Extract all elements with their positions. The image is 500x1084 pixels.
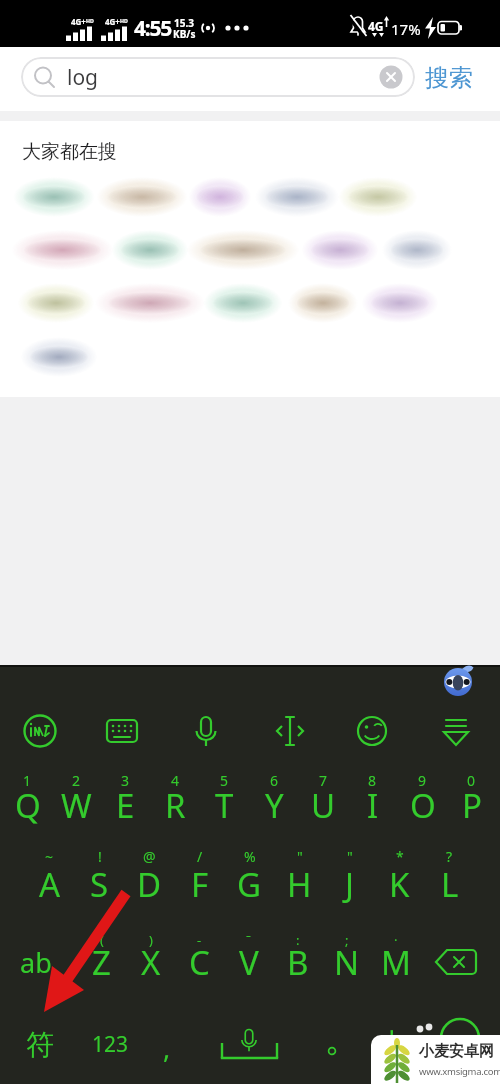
staticText: Y [265, 783, 284, 828]
staticText: U [311, 783, 336, 828]
staticText: 4:55 [134, 14, 172, 43]
staticText: P [462, 783, 482, 828]
staticText: 6 [270, 771, 279, 790]
button[interactable] [24, 286, 88, 320]
button[interactable] [308, 233, 372, 267]
button[interactable]: M [371, 939, 420, 985]
button[interactable] [20, 180, 88, 214]
button[interactable]: log [21, 57, 415, 97]
button[interactable] [104, 180, 180, 214]
button[interactable]: F [175, 861, 224, 907]
button[interactable]: B [273, 939, 322, 985]
button[interactable]: 符 [12, 1019, 68, 1069]
staticText: 8 [368, 771, 377, 790]
button[interactable] [18, 709, 62, 753]
staticText: 4 [171, 771, 180, 790]
button[interactable]: K [375, 861, 424, 907]
staticText: @ [143, 847, 156, 866]
staticText: ( [100, 931, 104, 949]
staticText: " [347, 847, 353, 866]
button[interactable]: Y [250, 782, 299, 828]
button[interactable]: U [299, 782, 348, 828]
button[interactable]: R [151, 782, 200, 828]
button[interactable]: Z [77, 939, 126, 985]
button[interactable]: X [126, 939, 175, 985]
button[interactable]: W [52, 782, 101, 828]
staticText: C [189, 940, 210, 985]
button[interactable] [27, 340, 91, 374]
button[interactable]: T [200, 782, 249, 828]
button[interactable] [388, 233, 446, 267]
button[interactable] [100, 709, 144, 753]
button[interactable]: 中 [367, 1019, 417, 1069]
staticText: H [287, 862, 312, 907]
staticText: www.xmsigma.com [419, 1065, 500, 1078]
button[interactable]: A [25, 861, 74, 907]
staticText: Z [92, 940, 111, 985]
button[interactable]: P [447, 782, 496, 828]
button[interactable] [310, 1025, 354, 1069]
button[interactable]: E [101, 782, 150, 828]
button[interactable] [438, 662, 480, 704]
staticText: 中 [378, 1026, 407, 1063]
staticText: 7 [319, 771, 328, 790]
button[interactable]: , [147, 1022, 187, 1072]
button[interactable] [428, 939, 484, 985]
button[interactable] [104, 286, 196, 320]
staticText: 1 [23, 771, 32, 790]
staticText: ~ [45, 847, 54, 866]
staticText: 4G [368, 18, 384, 32]
staticText: ! [98, 847, 102, 866]
button[interactable]: S [75, 861, 124, 907]
staticText: ; [345, 931, 349, 949]
button[interactable]: N [322, 939, 371, 985]
button[interactable]: V [224, 939, 273, 985]
staticText: 搜索 [425, 63, 473, 93]
button[interactable]: Q [3, 782, 52, 828]
button[interactable] [345, 180, 411, 214]
button[interactable]: I [348, 782, 397, 828]
button[interactable]: 搜索 [414, 53, 484, 103]
staticText: K [389, 862, 410, 907]
button[interactable]: O [398, 782, 447, 828]
button[interactable] [118, 233, 182, 267]
staticText: E [116, 783, 135, 828]
button[interactable]: H [275, 861, 324, 907]
staticText: D [137, 862, 162, 907]
staticText: " [297, 847, 303, 866]
button[interactable]: ab [10, 939, 62, 985]
button[interactable] [268, 709, 312, 753]
button[interactable] [434, 709, 478, 753]
button[interactable] [20, 233, 105, 267]
button[interactable] [294, 286, 352, 320]
button[interactable]: G [225, 861, 274, 907]
staticText: T [215, 783, 234, 828]
button[interactable] [184, 709, 228, 753]
staticText: · [394, 931, 398, 949]
button[interactable]: 123 [82, 1019, 138, 1069]
staticText: X [141, 940, 161, 985]
staticText: 3 [121, 771, 130, 790]
button[interactable]: C [175, 939, 224, 985]
staticText: G [237, 862, 262, 907]
button[interactable]: D [125, 861, 174, 907]
button[interactable] [194, 180, 246, 214]
staticText: L [441, 862, 459, 907]
button[interactable] [262, 180, 332, 214]
button[interactable] [350, 709, 394, 753]
button[interactable]: L [425, 861, 474, 907]
staticText: : [296, 931, 300, 949]
button[interactable]: J [325, 861, 374, 907]
staticText: 9 [418, 771, 427, 790]
staticText: 17% [391, 19, 421, 37]
button[interactable] [368, 286, 432, 320]
button[interactable] [196, 233, 290, 267]
staticText: ab [20, 944, 52, 981]
button[interactable] [210, 286, 276, 320]
button[interactable] [190, 1014, 310, 1074]
staticText: ˉ [246, 931, 251, 949]
staticText: R [165, 783, 186, 828]
staticText: 15.3 [174, 16, 194, 28]
staticText: I [367, 783, 379, 828]
staticText: B [287, 940, 309, 985]
